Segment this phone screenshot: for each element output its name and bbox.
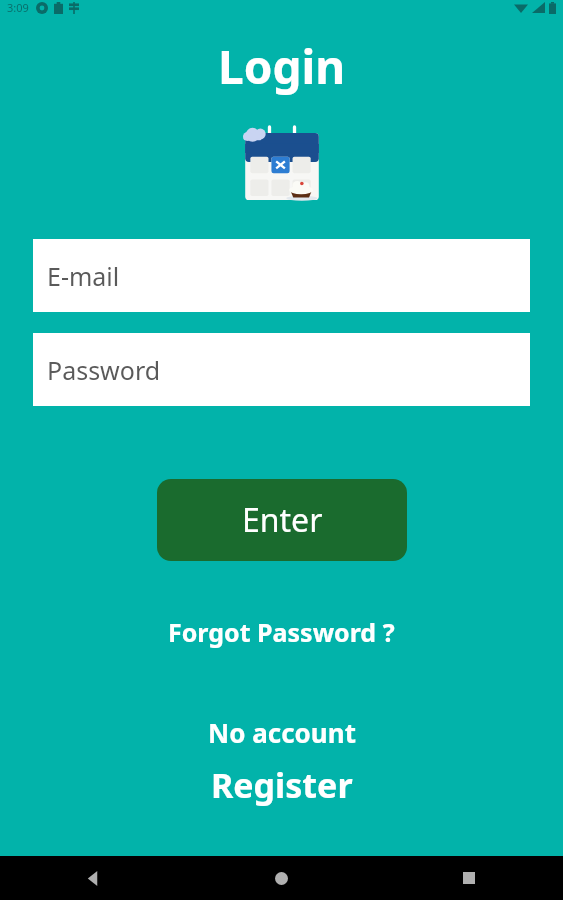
button[interactable]: Forgot Password ? [158,611,405,653]
staticText: Forgot Password ? [168,615,395,649]
button[interactable]: Password [33,333,530,406]
button[interactable]: Home [187,856,375,900]
button[interactable]: E-mail [33,239,530,312]
staticText: No account [208,715,356,750]
staticText: E-mail [47,259,120,293]
button[interactable]: Recents [375,856,563,900]
staticText: Login [218,35,346,98]
button[interactable]: Register [201,760,363,810]
staticText: Password [47,353,161,387]
staticText: Register [211,762,353,808]
staticText: Enter [242,498,323,542]
staticText: 3:09 [7,0,29,15]
button[interactable]: Enter [157,479,407,561]
button[interactable]: Back [0,856,187,900]
